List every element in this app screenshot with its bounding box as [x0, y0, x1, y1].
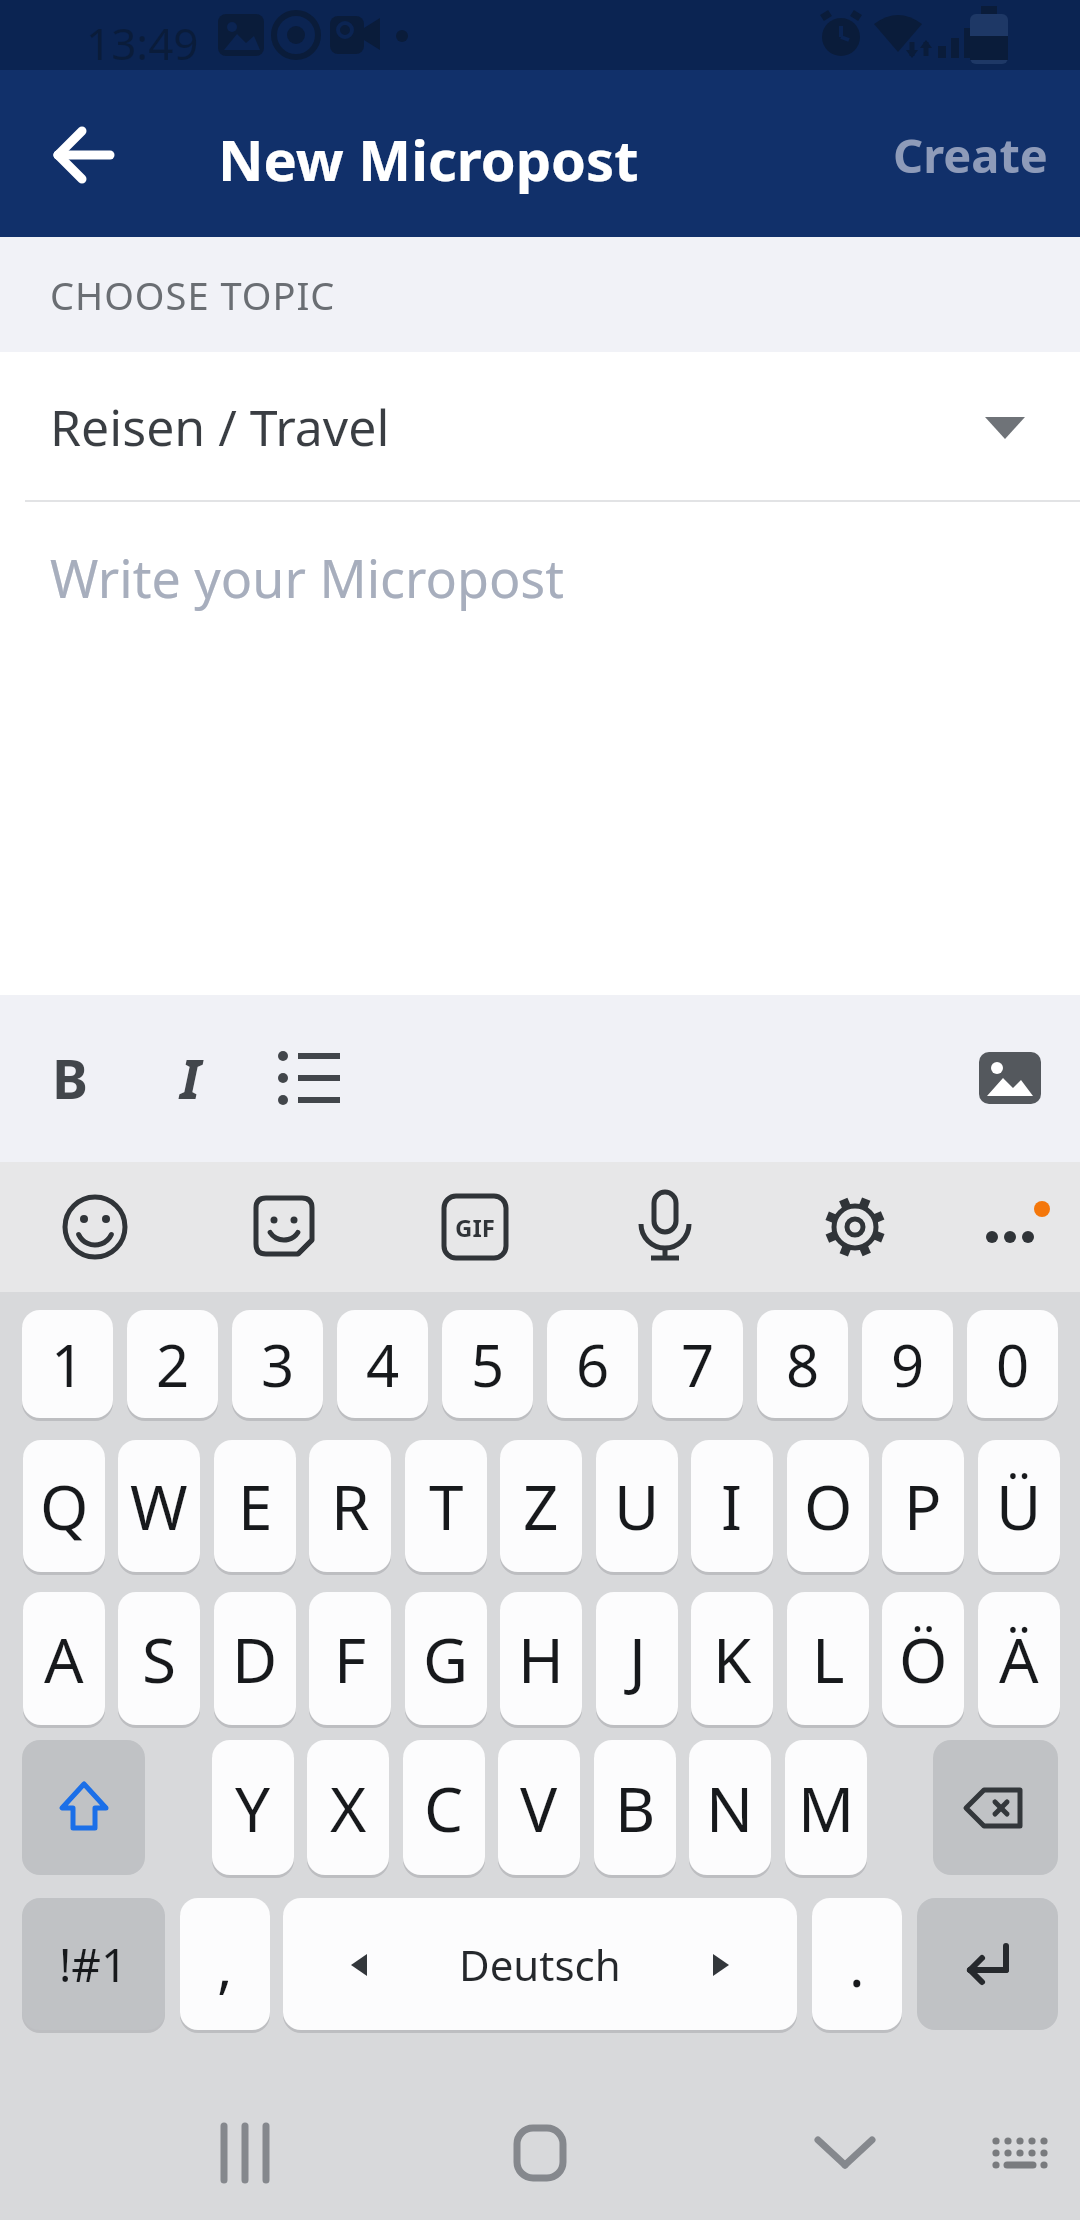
button[interactable]: F: [309, 1592, 391, 1725]
button[interactable]: L: [787, 1592, 869, 1725]
button[interactable]: G: [405, 1592, 487, 1725]
button[interactable]: B: [30, 1028, 110, 1128]
button[interactable]: [185, 2095, 305, 2210]
button[interactable]: ,: [180, 1898, 270, 2030]
button[interactable]: [785, 2095, 905, 2210]
button[interactable]: J: [596, 1592, 678, 1725]
button[interactable]: 2: [127, 1310, 218, 1418]
staticText: A: [44, 1617, 84, 1701]
button[interactable]: M: [785, 1740, 867, 1875]
staticText: Reisen / Travel: [50, 393, 390, 461]
staticText: Q: [40, 1464, 89, 1548]
staticText: Deutsch: [459, 1936, 621, 1993]
button[interactable]: [47, 1179, 143, 1275]
button[interactable]: V: [498, 1740, 580, 1875]
button[interactable]: GIF: [427, 1179, 523, 1275]
button[interactable]: Reisen / Travel: [0, 352, 1080, 502]
button[interactable]: A: [23, 1592, 105, 1725]
button[interactable]: W: [118, 1440, 200, 1572]
button[interactable]: [968, 1179, 1064, 1275]
button[interactable]: .: [812, 1898, 902, 2030]
button[interactable]: Create: [880, 100, 1060, 210]
button[interactable]: 6: [547, 1310, 638, 1418]
button[interactable]: 1: [22, 1310, 113, 1418]
button[interactable]: !#1: [22, 1898, 165, 2030]
staticText: D: [232, 1617, 278, 1701]
button[interactable]: O: [787, 1440, 869, 1572]
staticText: Z: [523, 1464, 559, 1548]
staticText: B: [615, 1766, 656, 1850]
button[interactable]: X: [307, 1740, 389, 1875]
staticText: .: [849, 1925, 865, 2004]
button[interactable]: [237, 1179, 333, 1275]
button[interactable]: 8: [757, 1310, 848, 1418]
button[interactable]: T: [405, 1440, 487, 1572]
button[interactable]: B: [594, 1740, 676, 1875]
staticText: F: [334, 1617, 367, 1701]
button[interactable]: [962, 1028, 1058, 1128]
button[interactable]: 3: [232, 1310, 323, 1418]
staticText: Ö: [899, 1617, 948, 1701]
button[interactable]: 9: [862, 1310, 953, 1418]
staticText: 6: [576, 1325, 610, 1404]
staticText: GIF: [455, 1211, 495, 1244]
button[interactable]: H: [500, 1592, 582, 1725]
staticText: Write your Micropost: [50, 542, 565, 613]
staticText: ,: [217, 1925, 233, 2004]
staticText: 2: [156, 1325, 190, 1404]
staticText: Ü: [996, 1464, 1042, 1548]
button[interactable]: Z: [500, 1440, 582, 1572]
button[interactable]: I: [691, 1440, 773, 1572]
staticText: B: [52, 1041, 88, 1115]
button[interactable]: Ä: [978, 1592, 1060, 1725]
staticText: O: [804, 1464, 853, 1548]
staticText: 13:49: [86, 13, 199, 73]
button[interactable]: [480, 2095, 600, 2210]
button[interactable]: E: [214, 1440, 296, 1572]
staticText: K: [713, 1617, 752, 1701]
staticText: !#1: [59, 1933, 128, 1996]
staticText: W: [130, 1464, 188, 1548]
button[interactable]: I: [150, 1028, 230, 1128]
staticText: 7: [681, 1325, 715, 1404]
button[interactable]: N: [689, 1740, 771, 1875]
staticText: 8: [786, 1325, 820, 1404]
button[interactable]: 7: [652, 1310, 743, 1418]
staticText: 1: [51, 1325, 85, 1404]
staticText: Create: [893, 123, 1048, 187]
button[interactable]: D: [214, 1592, 296, 1725]
button[interactable]: [933, 1740, 1058, 1875]
staticText: C: [424, 1766, 464, 1850]
button[interactable]: 5: [442, 1310, 533, 1418]
staticText: T: [429, 1464, 464, 1548]
button[interactable]: Q: [23, 1440, 105, 1572]
staticText: G: [423, 1617, 469, 1701]
button[interactable]: [917, 1898, 1058, 2030]
button[interactable]: U: [596, 1440, 678, 1572]
button[interactable]: 0: [967, 1310, 1058, 1418]
staticText: 0: [996, 1325, 1030, 1404]
staticText: V: [520, 1766, 558, 1850]
button[interactable]: [617, 1179, 713, 1275]
staticText: I: [180, 1041, 201, 1115]
staticText: H: [518, 1617, 564, 1701]
button[interactable]: Deutsch: [283, 1898, 797, 2030]
button[interactable]: [36, 107, 132, 203]
staticText: N: [706, 1766, 754, 1850]
button[interactable]: K: [691, 1592, 773, 1725]
staticText: M: [798, 1766, 855, 1850]
button[interactable]: C: [403, 1740, 485, 1875]
button[interactable]: [262, 1028, 358, 1128]
button[interactable]: [22, 1740, 145, 1875]
button[interactable]: R: [309, 1440, 391, 1572]
button[interactable]: S: [118, 1592, 200, 1725]
button[interactable]: Y: [212, 1740, 294, 1875]
button[interactable]: [807, 1179, 903, 1275]
button[interactable]: P: [882, 1440, 964, 1572]
button[interactable]: 4: [337, 1310, 428, 1418]
staticText: 9: [891, 1325, 925, 1404]
button[interactable]: Ü: [978, 1440, 1060, 1572]
button[interactable]: Ö: [882, 1592, 964, 1725]
button[interactable]: [965, 2095, 1075, 2210]
staticText: Y: [235, 1766, 271, 1850]
